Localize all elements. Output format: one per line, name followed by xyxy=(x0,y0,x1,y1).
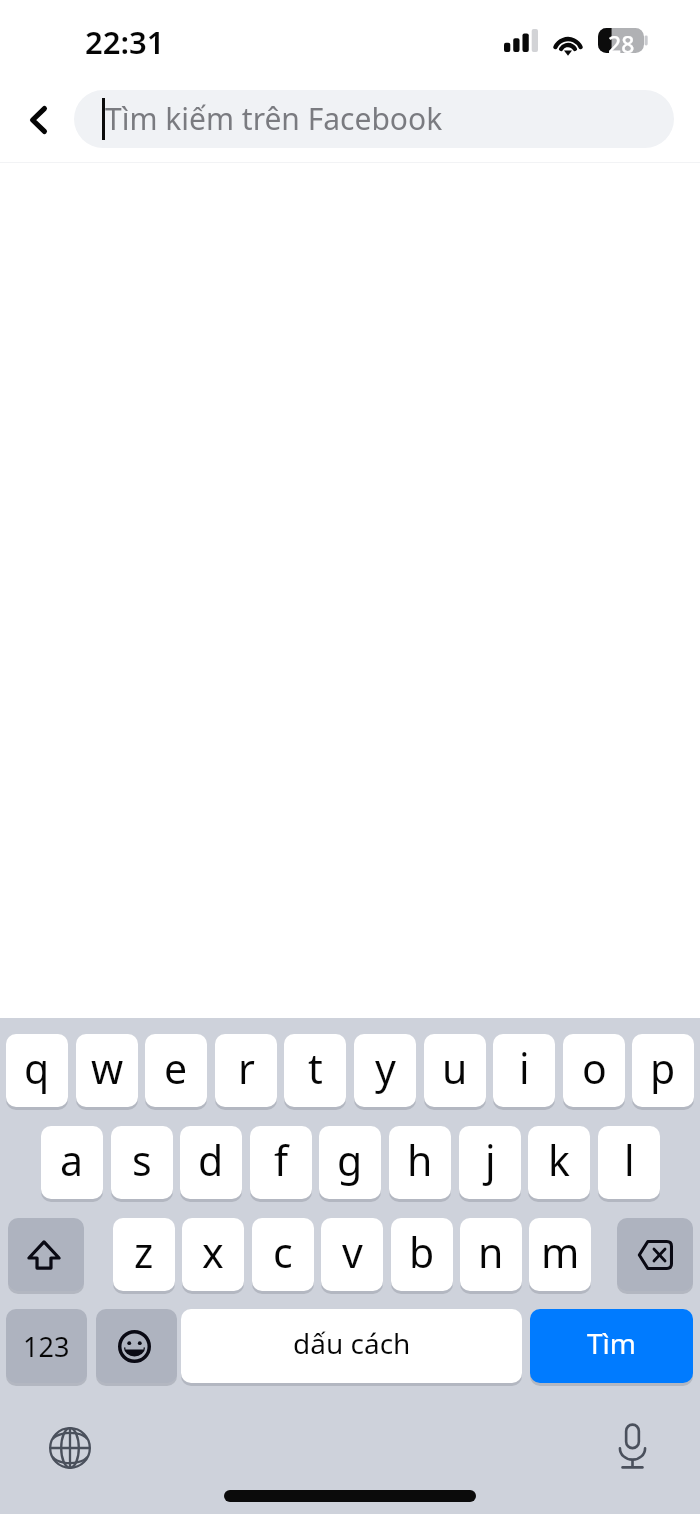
button[interactable]: o xyxy=(563,1034,625,1107)
staticText: s xyxy=(132,1132,152,1188)
button[interactable]: t xyxy=(284,1034,346,1107)
button[interactable]: f xyxy=(250,1126,312,1199)
staticText: 28 xyxy=(608,28,635,53)
button[interactable]: c xyxy=(252,1218,314,1291)
button[interactable]: x xyxy=(182,1218,244,1291)
staticText: Tìm kiếm trên Facebook xyxy=(105,98,443,139)
button[interactable]: p xyxy=(632,1034,694,1107)
button[interactable]: m xyxy=(529,1218,591,1291)
button[interactable]: k xyxy=(528,1126,590,1199)
button[interactable]: v xyxy=(321,1218,383,1291)
staticText: m xyxy=(541,1224,580,1280)
staticText: 123 xyxy=(23,1328,70,1365)
staticText: x xyxy=(202,1224,224,1280)
staticText: w xyxy=(91,1040,124,1096)
staticText: Tìm xyxy=(587,1324,636,1362)
staticText: u xyxy=(442,1040,468,1096)
staticText: t xyxy=(308,1040,323,1096)
button[interactable]: w xyxy=(76,1034,138,1107)
staticText: f xyxy=(274,1132,289,1188)
button[interactable]: Tìm kiếm trên Facebook xyxy=(74,90,674,148)
staticText: k xyxy=(548,1132,570,1188)
staticText: o xyxy=(582,1040,607,1096)
button[interactable]: Dictate xyxy=(606,1420,658,1472)
button[interactable]: i xyxy=(493,1034,555,1107)
button[interactable]: dấu cách xyxy=(181,1309,522,1383)
staticText: e xyxy=(164,1040,188,1096)
button[interactable]: Tìm xyxy=(530,1309,693,1383)
button[interactable]: n xyxy=(460,1218,522,1291)
staticText: q xyxy=(24,1040,50,1096)
staticText: dấu cách xyxy=(293,1324,411,1362)
staticText: b xyxy=(409,1224,435,1280)
button[interactable]: e xyxy=(145,1034,207,1107)
staticText: d xyxy=(198,1132,224,1188)
button[interactable]: y xyxy=(354,1034,416,1107)
button[interactable]: 123 xyxy=(6,1309,87,1383)
staticText: g xyxy=(337,1132,363,1188)
button[interactable]: Change keyboard xyxy=(44,1422,96,1474)
staticText: y xyxy=(375,1040,396,1096)
staticText: i xyxy=(519,1040,530,1096)
button[interactable]: q xyxy=(6,1034,68,1107)
staticText: c xyxy=(273,1224,293,1280)
staticText: j xyxy=(485,1132,496,1188)
button[interactable]: j xyxy=(459,1126,521,1199)
button[interactable]: Emoji xyxy=(96,1309,177,1383)
staticText: h xyxy=(407,1132,433,1188)
staticText: r xyxy=(238,1040,255,1096)
staticText: p xyxy=(650,1040,676,1096)
button[interactable]: Shift xyxy=(8,1218,84,1291)
button[interactable]: u xyxy=(424,1034,486,1107)
button[interactable]: z xyxy=(113,1218,175,1291)
button[interactable]: h xyxy=(389,1126,451,1199)
button[interactable]: Back xyxy=(8,85,68,163)
button[interactable]: a xyxy=(41,1126,103,1199)
button[interactable]: s xyxy=(111,1126,173,1199)
button[interactable]: b xyxy=(391,1218,453,1291)
button[interactable]: d xyxy=(180,1126,242,1199)
staticText: v xyxy=(342,1224,363,1280)
staticText: z xyxy=(134,1224,154,1280)
staticText: n xyxy=(478,1224,504,1280)
button[interactable]: Backspace xyxy=(617,1218,693,1291)
staticText: a xyxy=(60,1132,84,1188)
staticText: 22:31 xyxy=(85,21,165,63)
button[interactable]: r xyxy=(215,1034,277,1107)
button[interactable]: l xyxy=(598,1126,660,1199)
staticText: l xyxy=(624,1132,635,1188)
button[interactable]: g xyxy=(319,1126,381,1199)
